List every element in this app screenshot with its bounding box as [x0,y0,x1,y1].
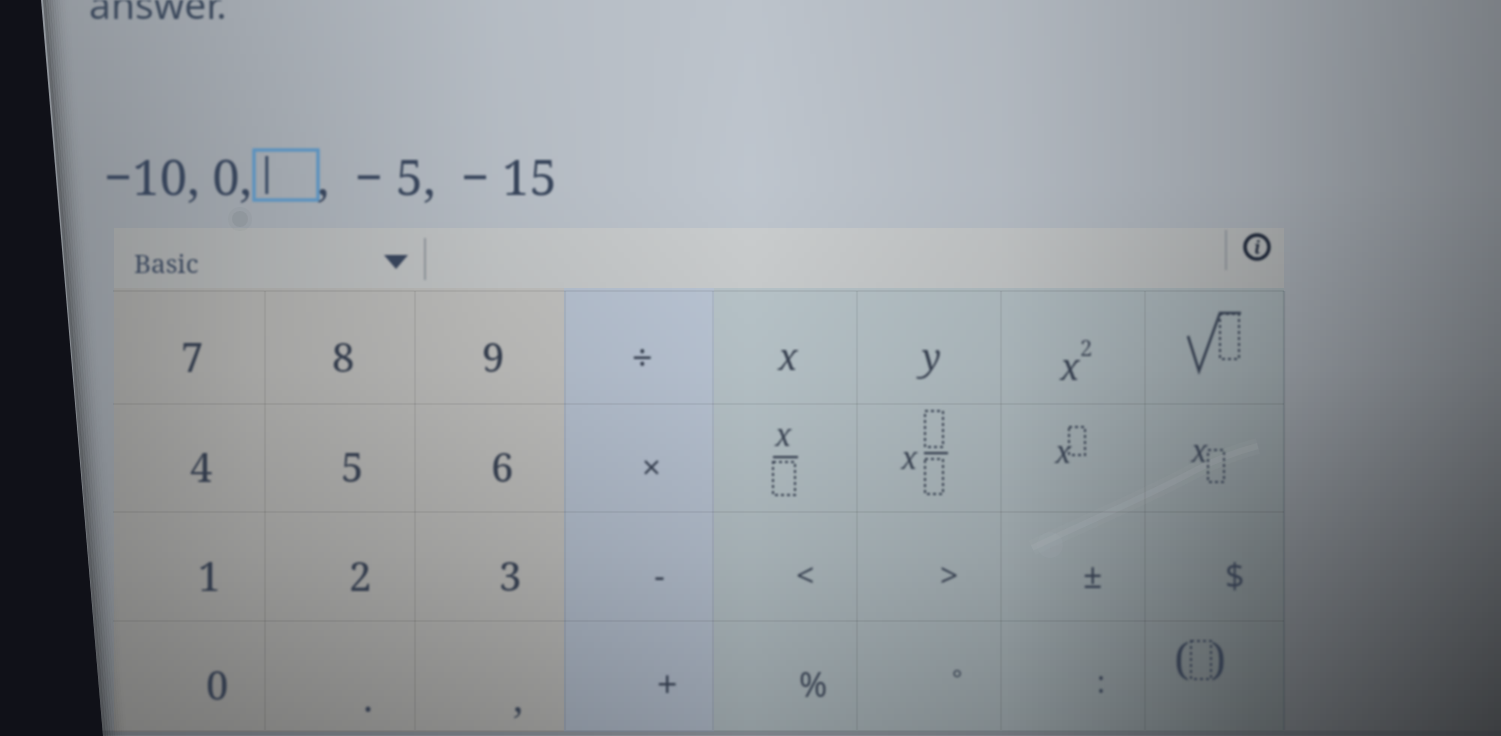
button[interactable]: % [741,629,885,736]
staticText: 2 [1080,332,1093,362]
staticText: - [654,552,665,598]
staticText: : [1097,661,1106,702]
staticText: ° [952,661,963,694]
button[interactable]: Information [1243,233,1271,261]
button[interactable]: 2 [285,520,435,629]
staticText: ± [1083,552,1103,598]
button[interactable]: Fraction [713,404,857,512]
button[interactable]: < [733,520,877,629]
button[interactable]: Square root [1145,292,1284,404]
staticText: answer. [89,0,227,30]
button[interactable]: x [716,300,860,412]
button[interactable]: Parentheses [1145,621,1284,730]
button[interactable]: : [1029,629,1173,736]
button[interactable]: 7 [116,300,268,412]
staticText: ÷ [632,332,653,381]
staticText: x [778,332,798,381]
button[interactable]: 3 [435,520,585,629]
staticText: x [901,437,918,478]
staticText: ) [1211,628,1227,688]
button[interactable]: x [1004,300,1148,412]
staticText: x [1055,431,1072,472]
button[interactable]: Answer input box [254,150,318,200]
button[interactable]: - [585,520,733,629]
staticText: < [796,553,815,597]
staticText: % [799,661,828,707]
staticText: x [775,414,792,455]
staticText: $ [1225,552,1245,598]
staticText: , − 5, − 15 [317,143,557,210]
staticText: > [940,553,959,597]
button[interactable]: . [293,629,443,736]
staticText: 6 [491,439,514,493]
staticText: i [1254,235,1261,260]
button[interactable]: ÷ [568,300,716,412]
button[interactable]: Mixed fraction [857,404,1001,512]
button[interactable]: y [860,300,1004,412]
staticText: 4 [190,439,213,493]
staticText: , [513,669,523,723]
button[interactable]: $ [1165,520,1304,629]
button[interactable]: Subscript [1145,404,1284,512]
button[interactable]: ± [1021,520,1165,629]
button[interactable]: 5 [277,412,427,520]
staticText: 1 [198,548,221,602]
button[interactable]: 8 [268,300,418,412]
button[interactable]: 6 [427,412,577,520]
staticText: Basic [134,245,199,280]
button[interactable]: 9 [418,300,568,412]
button[interactable]: > [877,520,1021,629]
button[interactable]: 1 [133,520,285,629]
button[interactable]: 0 [141,629,293,736]
staticText: 2 [349,548,372,602]
button[interactable]: Power [1001,404,1145,512]
staticText: + [657,659,678,708]
staticText: x [1191,430,1208,471]
staticText: 8 [332,329,355,383]
staticText: −10, 0, [104,143,252,210]
button[interactable]: , [443,629,593,736]
staticText: y [922,332,942,381]
button[interactable]: Basic [113,229,413,291]
button[interactable]: + [593,629,741,736]
staticText: . [363,669,373,723]
staticText: 9 [482,329,505,383]
staticText: ( [1174,628,1190,688]
staticText: 5 [341,439,364,493]
button[interactable]: × [577,412,725,520]
button[interactable]: 4 [125,412,277,520]
staticText: × [642,444,661,489]
staticText: 0 [206,657,229,711]
staticText: 3 [499,548,522,602]
staticText: 7 [181,329,204,383]
button[interactable]: ° [885,629,1029,736]
staticText: x [1060,342,1080,391]
